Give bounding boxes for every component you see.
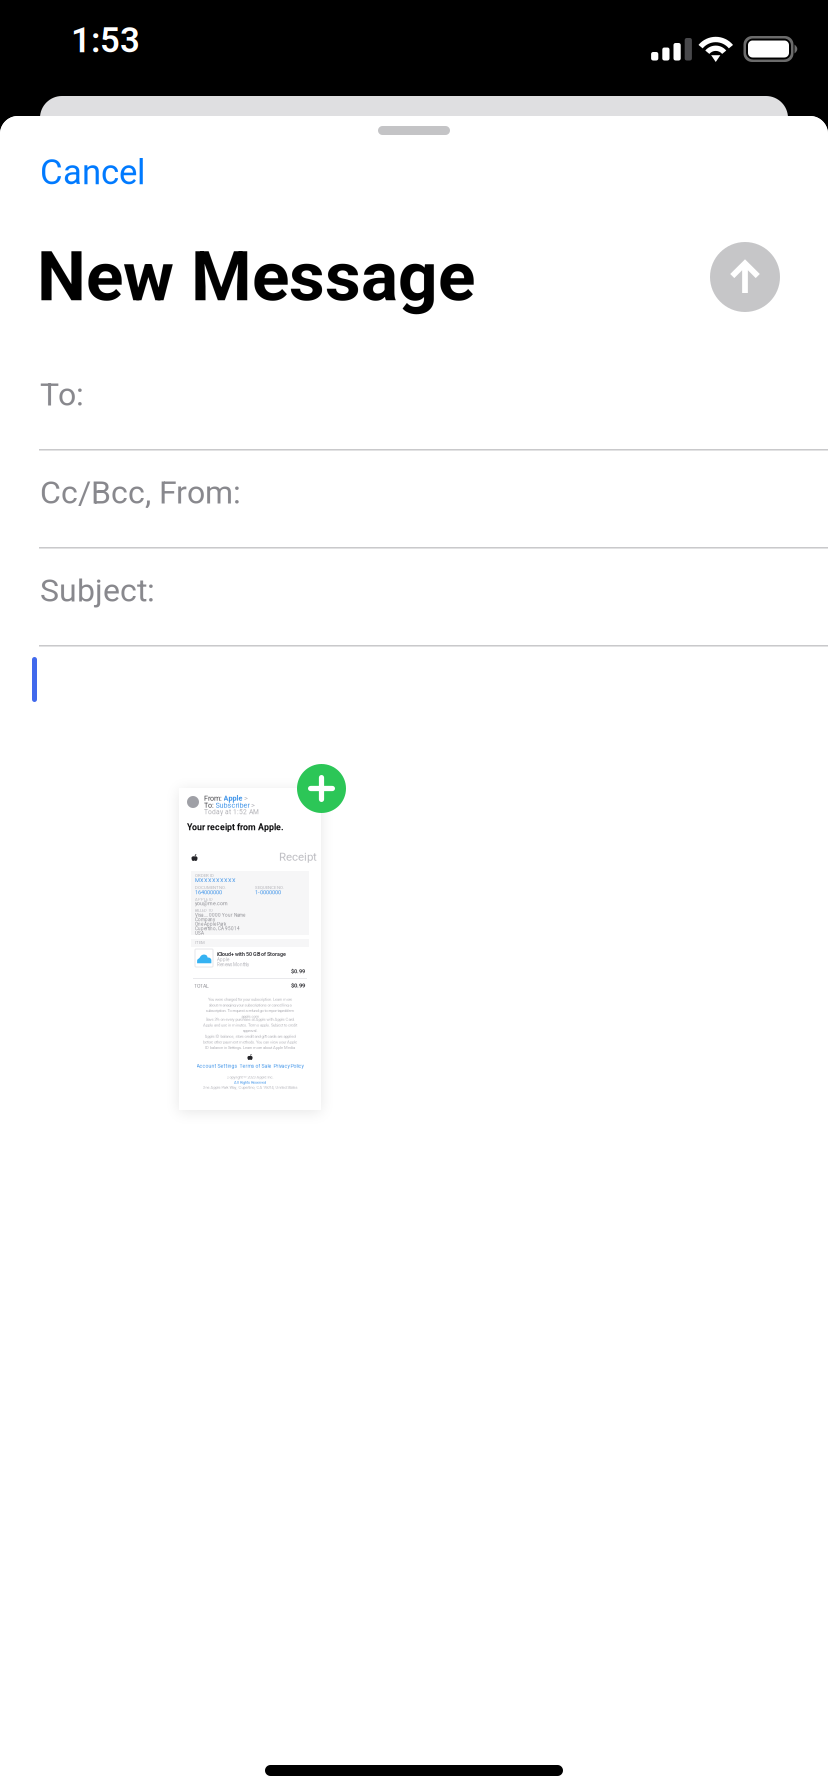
staticText: One Apple Park [195,921,226,927]
button[interactable]: To: [0,346,828,443]
staticText: New Message [37,236,475,317]
button[interactable]: Cancel [24,140,165,205]
staticText: Cc/Bcc, From: [40,474,241,511]
staticText: SEQUENCE NO. [255,885,284,890]
staticText: Visa .... 0000 Your Name [195,912,245,918]
button[interactable]: Cc/Bcc, From: [0,444,828,541]
staticText: you@me.com [195,900,228,907]
staticText: .apple.com [240,1014,259,1019]
staticText: Save 3% on every purchase at Apple with … [205,1017,294,1022]
staticText: Subject: [40,572,155,609]
staticText: All Rights Reserved [234,1080,266,1085]
staticText: > [244,794,248,802]
staticText: 1:53 [71,20,140,61]
staticText: APPLE ID [195,897,213,902]
staticText: 1-0000000 [255,889,281,896]
staticText: DOCUMENT NO. [195,885,226,890]
staticText: $0.99 [291,968,305,975]
staticText: ITEM [195,940,205,945]
staticText: Copyright © 2023 Apple Inc. [226,1075,273,1079]
staticText: Apple ID balance, store credit and gift … [204,1034,295,1039]
staticText: One Apple Park Way, Cupertino, CA 95014,… [202,1085,297,1090]
staticText: BILLED TO [195,908,213,913]
staticText: To: [40,376,84,413]
staticText: about managing your subscriptions or can… [208,1003,291,1007]
staticText: USA [195,930,204,936]
button[interactable]: Subject: [0,542,828,639]
staticText: Apple [223,794,242,802]
staticText: > [251,801,255,809]
staticText: $0.99 [291,982,305,989]
staticText: TOTAL [194,983,209,989]
staticText: ORDER ID [195,873,214,878]
staticText: Renews Monthly [217,962,249,967]
staticText: You were charged for your subscription. … [208,997,292,1002]
staticText: Subscriber [215,801,249,809]
staticText: Apple [217,957,229,962]
staticText: Cancel [40,152,145,193]
staticText: subscription. To request a refund go to … [205,1008,294,1013]
staticText: To: [204,801,214,809]
button[interactable]: Send [710,242,780,312]
staticText: Receipt [279,850,317,863]
staticText: Account Settings Terms of Sale Privacy P… [196,1063,303,1069]
staticText: Cupertino, CA 95014 [195,926,240,931]
staticText: Your receipt from Apple. [187,822,284,832]
staticText: From: [204,794,222,802]
button[interactable]: Add attachment [297,764,346,813]
staticText: 164000000 [195,889,222,896]
staticText: Today at 1:52 AM [204,808,259,816]
staticText: MXXXXXXXXX [195,877,236,884]
staticText: before other payment methods. You can vi… [203,1040,297,1044]
staticText: Apply and use in minutes. Terms apply. S… [203,1023,297,1027]
staticText: iCloud+ with 50 GB of Storage [217,951,286,957]
staticText: Company [195,917,215,922]
staticText: ID balance in Settings. Learn more about… [205,1045,295,1050]
staticText: approval. [242,1028,257,1033]
